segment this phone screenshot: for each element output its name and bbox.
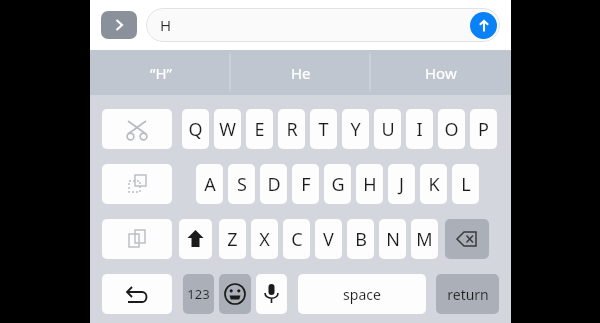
button[interactable]: I [406, 109, 433, 149]
button[interactable]: “H” [90, 50, 231, 95]
button[interactable]: H [356, 164, 383, 204]
button[interactable]: space [298, 274, 426, 314]
button[interactable]: K [420, 164, 447, 204]
staticText: 123 [187, 285, 210, 303]
staticText: “H” [150, 63, 172, 83]
button[interactable]: G [324, 164, 351, 204]
staticText: How [425, 63, 457, 83]
button[interactable]: A [196, 164, 223, 204]
button[interactable]: X [251, 219, 278, 259]
button[interactable]: Undo [102, 274, 172, 314]
button[interactable]: W [214, 109, 241, 149]
button[interactable]: H [146, 8, 500, 42]
staticText: D [267, 172, 281, 197]
button[interactable]: T [310, 109, 337, 149]
button[interactable]: Emoji [219, 274, 251, 314]
button[interactable]: V [315, 219, 342, 259]
staticText: space [343, 285, 381, 304]
button[interactable]: L [452, 164, 479, 204]
button[interactable]: Cut [102, 109, 172, 149]
button[interactable]: Expand [101, 11, 137, 39]
button[interactable]: E [246, 109, 273, 149]
staticText: return [447, 285, 489, 304]
staticText: V [323, 227, 334, 252]
staticText: J [399, 172, 404, 197]
button[interactable]: Q [182, 109, 209, 149]
staticText: B [355, 227, 367, 252]
button[interactable]: O [438, 109, 465, 149]
button[interactable]: Z [219, 219, 246, 259]
staticText: F [301, 172, 311, 197]
button[interactable]: return [436, 274, 499, 314]
staticText: P [478, 117, 489, 142]
staticText: R [286, 117, 298, 142]
staticText: H [363, 172, 377, 197]
staticText: A [204, 172, 216, 197]
button[interactable]: 123 [183, 274, 214, 314]
staticText: I [416, 117, 423, 142]
staticText: G [331, 172, 345, 197]
button[interactable]: He [231, 50, 371, 95]
staticText: T [318, 117, 329, 142]
button[interactable]: Copy [102, 164, 172, 204]
staticText: H [160, 15, 172, 35]
staticText: M [416, 227, 433, 252]
staticText: S [237, 172, 247, 197]
button[interactable]: P [470, 109, 497, 149]
button[interactable]: Shift [179, 219, 212, 259]
staticText: Q [188, 117, 203, 142]
staticText: He [291, 63, 311, 83]
staticText: X [259, 227, 270, 252]
button[interactable]: B [347, 219, 374, 259]
button[interactable]: U [374, 109, 401, 149]
button[interactable]: C [283, 219, 310, 259]
button[interactable]: How [371, 50, 511, 95]
button[interactable]: Paste [102, 219, 172, 259]
staticText: W [219, 117, 236, 142]
button[interactable]: S [228, 164, 255, 204]
button[interactable]: N [379, 219, 406, 259]
staticText: L [461, 172, 471, 197]
button[interactable]: Backspace [445, 219, 489, 259]
staticText: C [291, 227, 303, 252]
button[interactable]: Send [470, 12, 497, 39]
button[interactable]: F [292, 164, 319, 204]
staticText: U [381, 117, 395, 142]
button[interactable]: Y [342, 109, 369, 149]
staticText: O [444, 117, 459, 142]
staticText: Y [350, 117, 361, 142]
button[interactable]: J [388, 164, 415, 204]
staticText: K [428, 172, 440, 197]
staticText: N [386, 227, 400, 252]
button[interactable]: R [278, 109, 305, 149]
button[interactable]: Dictate [256, 274, 287, 314]
staticText: Z [227, 227, 238, 252]
button[interactable]: M [411, 219, 438, 259]
staticText: E [254, 117, 265, 142]
button[interactable]: D [260, 164, 287, 204]
